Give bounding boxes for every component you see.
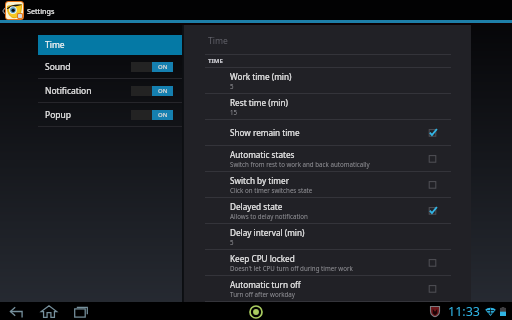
staticText: Settings (27, 6, 55, 16)
button[interactable]: Unchecked (427, 257, 438, 268)
staticText: ON (158, 63, 168, 71)
button[interactable]: Rest time (min) (184, 94, 471, 119)
staticText: Automatic states (230, 149, 295, 160)
button[interactable]: Unchecked (427, 179, 438, 190)
staticText: TIME (208, 57, 223, 65)
button[interactable]: Time (38, 35, 182, 55)
staticText: 11:33 (448, 303, 480, 320)
button[interactable]: Notification (38, 79, 182, 102)
staticText: Automatic turn off (230, 279, 301, 290)
button[interactable]: Unchecked (427, 153, 438, 164)
button[interactable]: Toggle on (131, 86, 173, 96)
button[interactable]: Work time (min) (184, 68, 471, 93)
button[interactable]: Show remain time (184, 120, 471, 145)
staticText: Allows to delay notification (230, 212, 308, 220)
button[interactable]: Back (8, 303, 25, 320)
button[interactable]: Screenshot (248, 304, 263, 319)
button[interactable]: Automatic turn off (184, 276, 471, 301)
button[interactable]: Delayed state (184, 198, 471, 223)
staticText: Show remain time (230, 127, 300, 138)
button[interactable]: Checked (427, 205, 438, 216)
staticText: Click on timer switches state (230, 186, 313, 194)
button[interactable]: Automatic states (184, 146, 471, 171)
staticText: ON (158, 111, 168, 119)
button[interactable]: Keep CPU locked (184, 250, 471, 275)
staticText: Delay interval (min) (230, 227, 305, 238)
button[interactable]: Home (40, 303, 57, 320)
button[interactable]: Unchecked (427, 283, 438, 294)
staticText: Keep CPU locked (230, 253, 295, 264)
staticText: 5 (230, 82, 234, 90)
button[interactable]: Popup (38, 103, 182, 126)
button[interactable]: Recents (72, 303, 89, 320)
button[interactable]: Delay interval (min) (184, 224, 471, 249)
staticText: Switch by timer (230, 175, 290, 186)
staticText: Work time (min) (230, 71, 292, 82)
staticText: ON (158, 87, 168, 95)
button[interactable]: Switch by timer (184, 172, 471, 197)
other: App icon (5, 1, 24, 20)
button[interactable]: Checked (427, 127, 438, 138)
staticText: Sound (45, 61, 131, 73)
staticText: Time (208, 35, 228, 47)
staticText: Switch from rest to work and back automa… (230, 160, 370, 168)
button[interactable]: Toggle on (131, 62, 173, 72)
staticText: 15 (230, 108, 238, 116)
button[interactable]: Toggle on (131, 110, 173, 120)
button[interactable]: Sound (38, 55, 182, 78)
staticText: Popup (45, 109, 131, 121)
staticText: Doesn't let CPU turn off during timer wo… (230, 264, 353, 272)
staticText: Rest time (min) (230, 97, 288, 108)
staticText: Delayed state (230, 201, 283, 212)
staticText: Turn off after workday (230, 290, 295, 298)
staticText: Notification (45, 85, 131, 97)
staticText: Time (45, 39, 65, 51)
staticText: 5 (230, 238, 234, 246)
